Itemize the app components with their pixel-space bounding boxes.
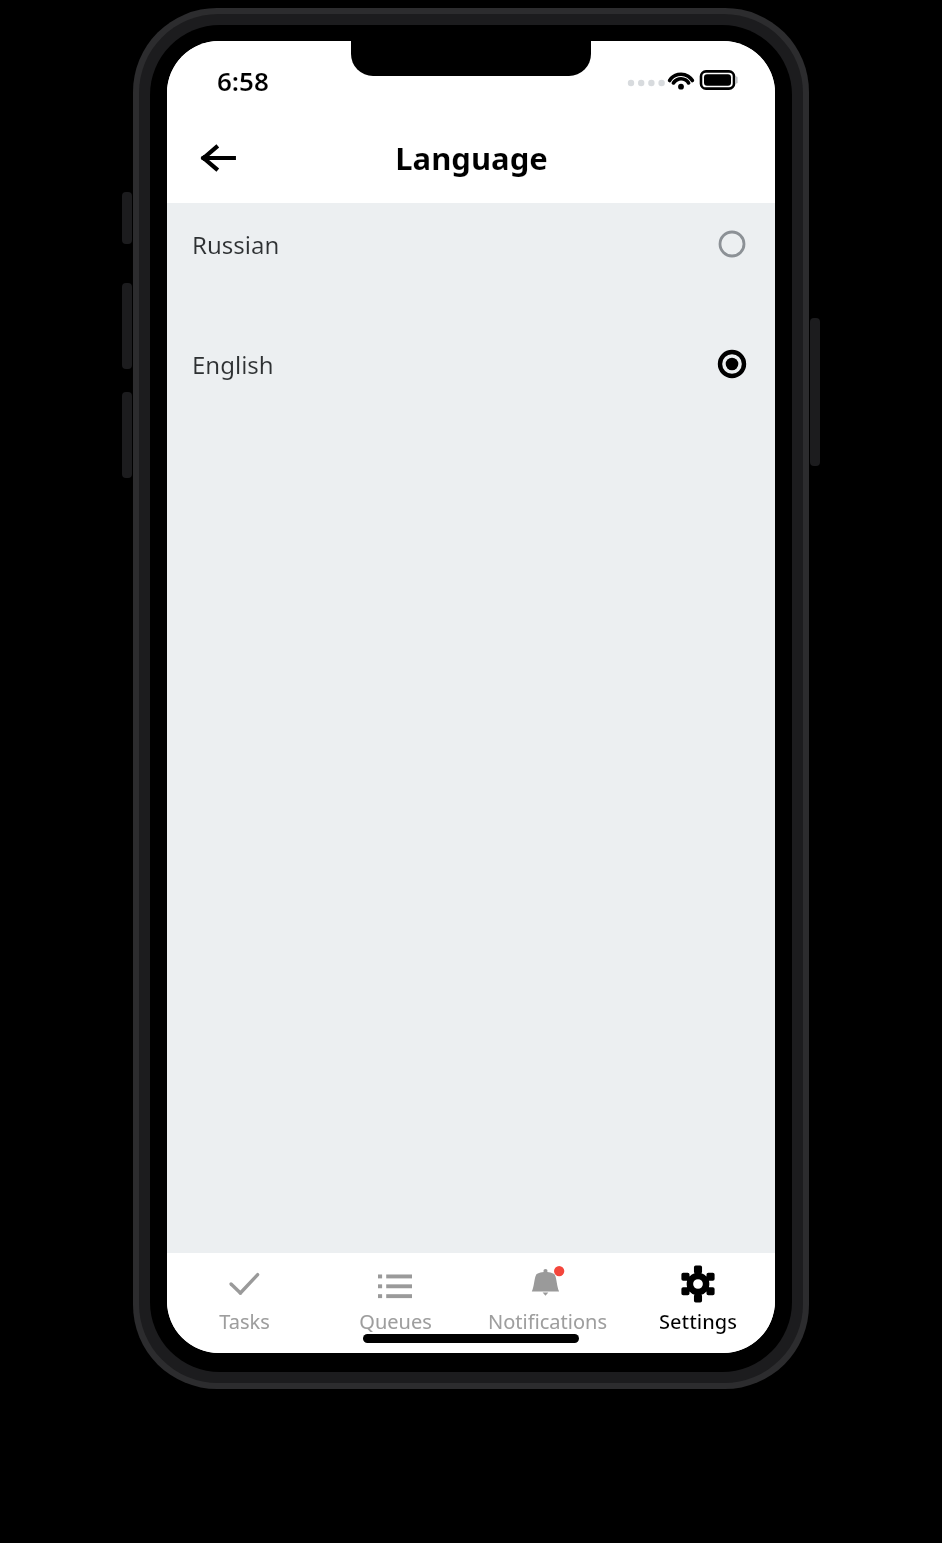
staticText: Queues (359, 1308, 432, 1335)
staticText: Russian (192, 228, 280, 261)
button[interactable]: English (167, 323, 775, 405)
button[interactable]: Queues (320, 1253, 470, 1345)
button[interactable]: Settings (623, 1253, 773, 1345)
button[interactable]: Notifications (472, 1253, 622, 1345)
button[interactable]: Russian (167, 203, 775, 285)
button[interactable]: Tasks (169, 1253, 319, 1345)
staticText: Tasks (219, 1308, 270, 1335)
staticText: Settings (659, 1308, 737, 1335)
button[interactable]: Back (189, 129, 247, 187)
staticText: Notifications (488, 1308, 607, 1335)
staticText: Language (395, 137, 548, 179)
staticText: English (192, 348, 274, 381)
staticText: 6:58 (217, 63, 269, 98)
